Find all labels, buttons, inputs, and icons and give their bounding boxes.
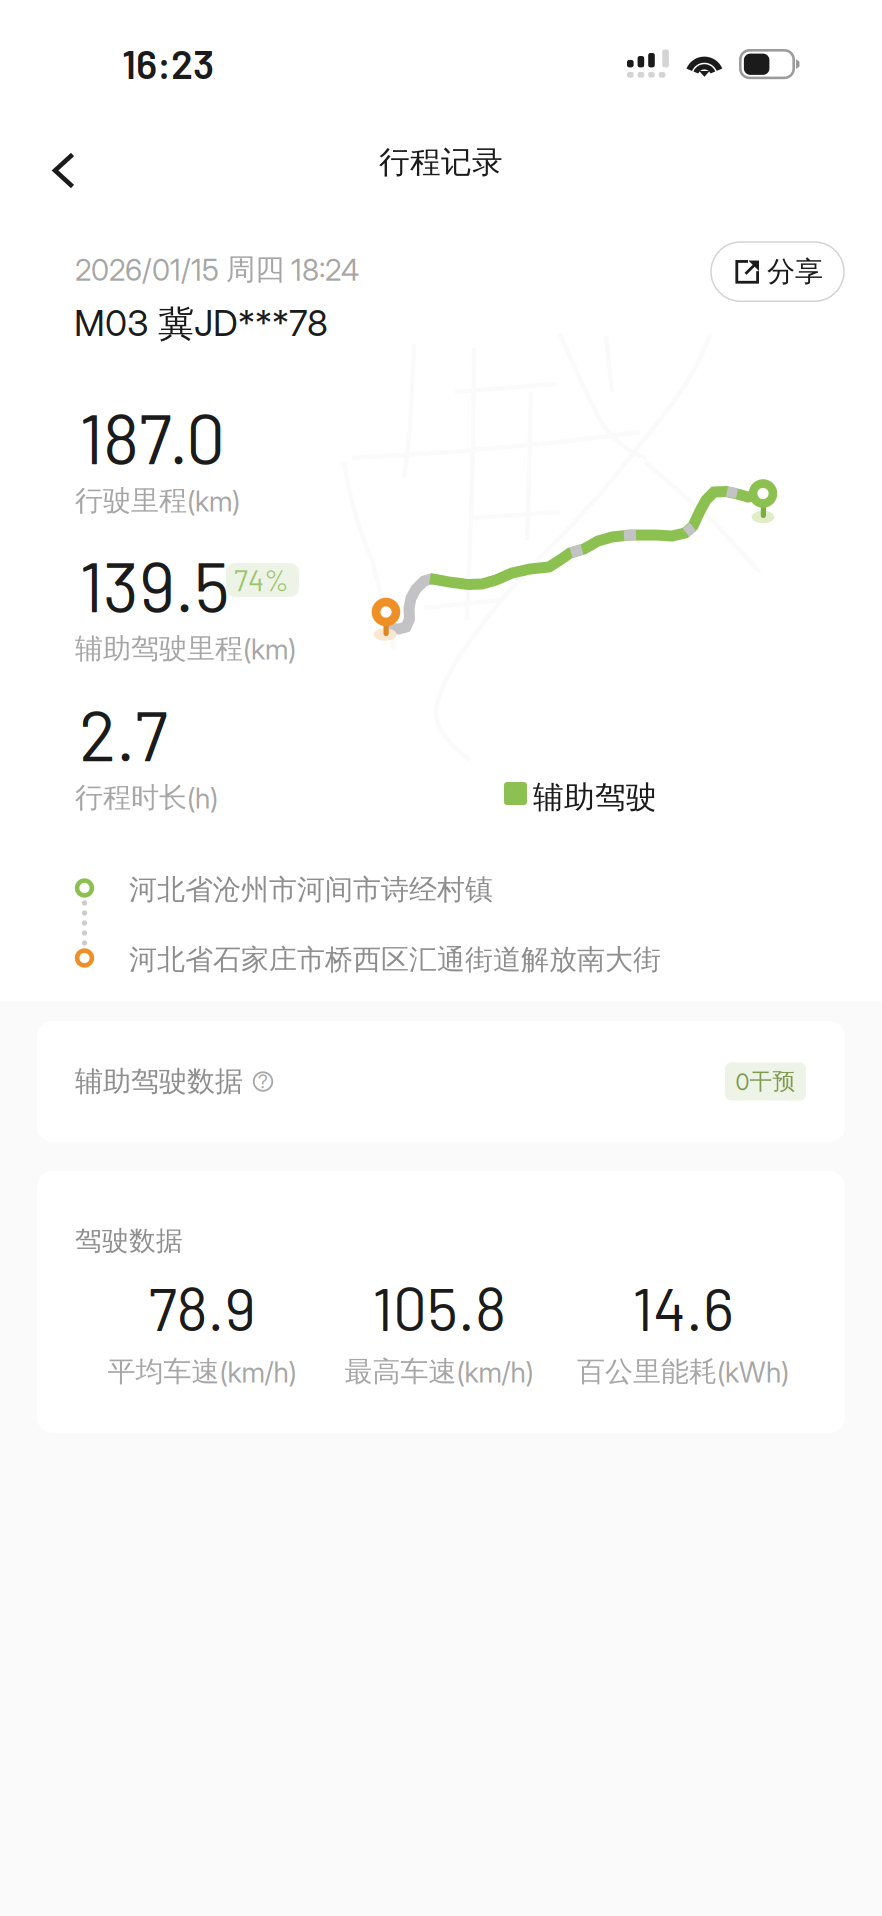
staticText: 河北省石家庄市桥西区汇通街道解放南大街	[129, 942, 661, 977]
staticText: 105.8	[372, 1271, 506, 1343]
button[interactable]: 分享	[711, 242, 844, 301]
staticText: 14.6	[632, 1271, 734, 1343]
staticText: 74%	[234, 562, 289, 597]
staticText: 0干预	[735, 1067, 795, 1096]
staticText: 2.7	[79, 692, 168, 775]
staticText: 辅助驾驶	[533, 778, 657, 817]
staticText: 行驶里程(km)	[75, 483, 240, 518]
staticText: 辅助驾驶里程(km)	[75, 631, 296, 666]
staticText: 78.9	[148, 1271, 255, 1343]
staticText: 最高车速(km/h)	[344, 1354, 533, 1389]
staticText: ?	[258, 1070, 268, 1093]
staticText: 139.5	[79, 543, 230, 626]
staticText: 行程记录	[379, 143, 503, 182]
staticText: 187.0	[79, 395, 225, 478]
staticText: 分享	[767, 254, 823, 289]
staticText: 辅助驾驶数据	[75, 1064, 243, 1099]
staticText: 平均车速(km/h)	[107, 1354, 296, 1389]
staticText: 河北省沧州市河间市诗经村镇	[129, 872, 493, 907]
staticText: 2026/01/15 周四 18:24	[75, 251, 359, 288]
staticText: 16:23	[122, 39, 214, 87]
staticText: 驾驶数据	[75, 1224, 183, 1258]
button[interactable]: 返回	[29, 130, 109, 212]
staticText: 行程时长(h)	[75, 780, 218, 815]
staticText: 百公里能耗(kWh)	[577, 1354, 789, 1389]
staticText: M03 冀JD***78	[74, 301, 328, 347]
